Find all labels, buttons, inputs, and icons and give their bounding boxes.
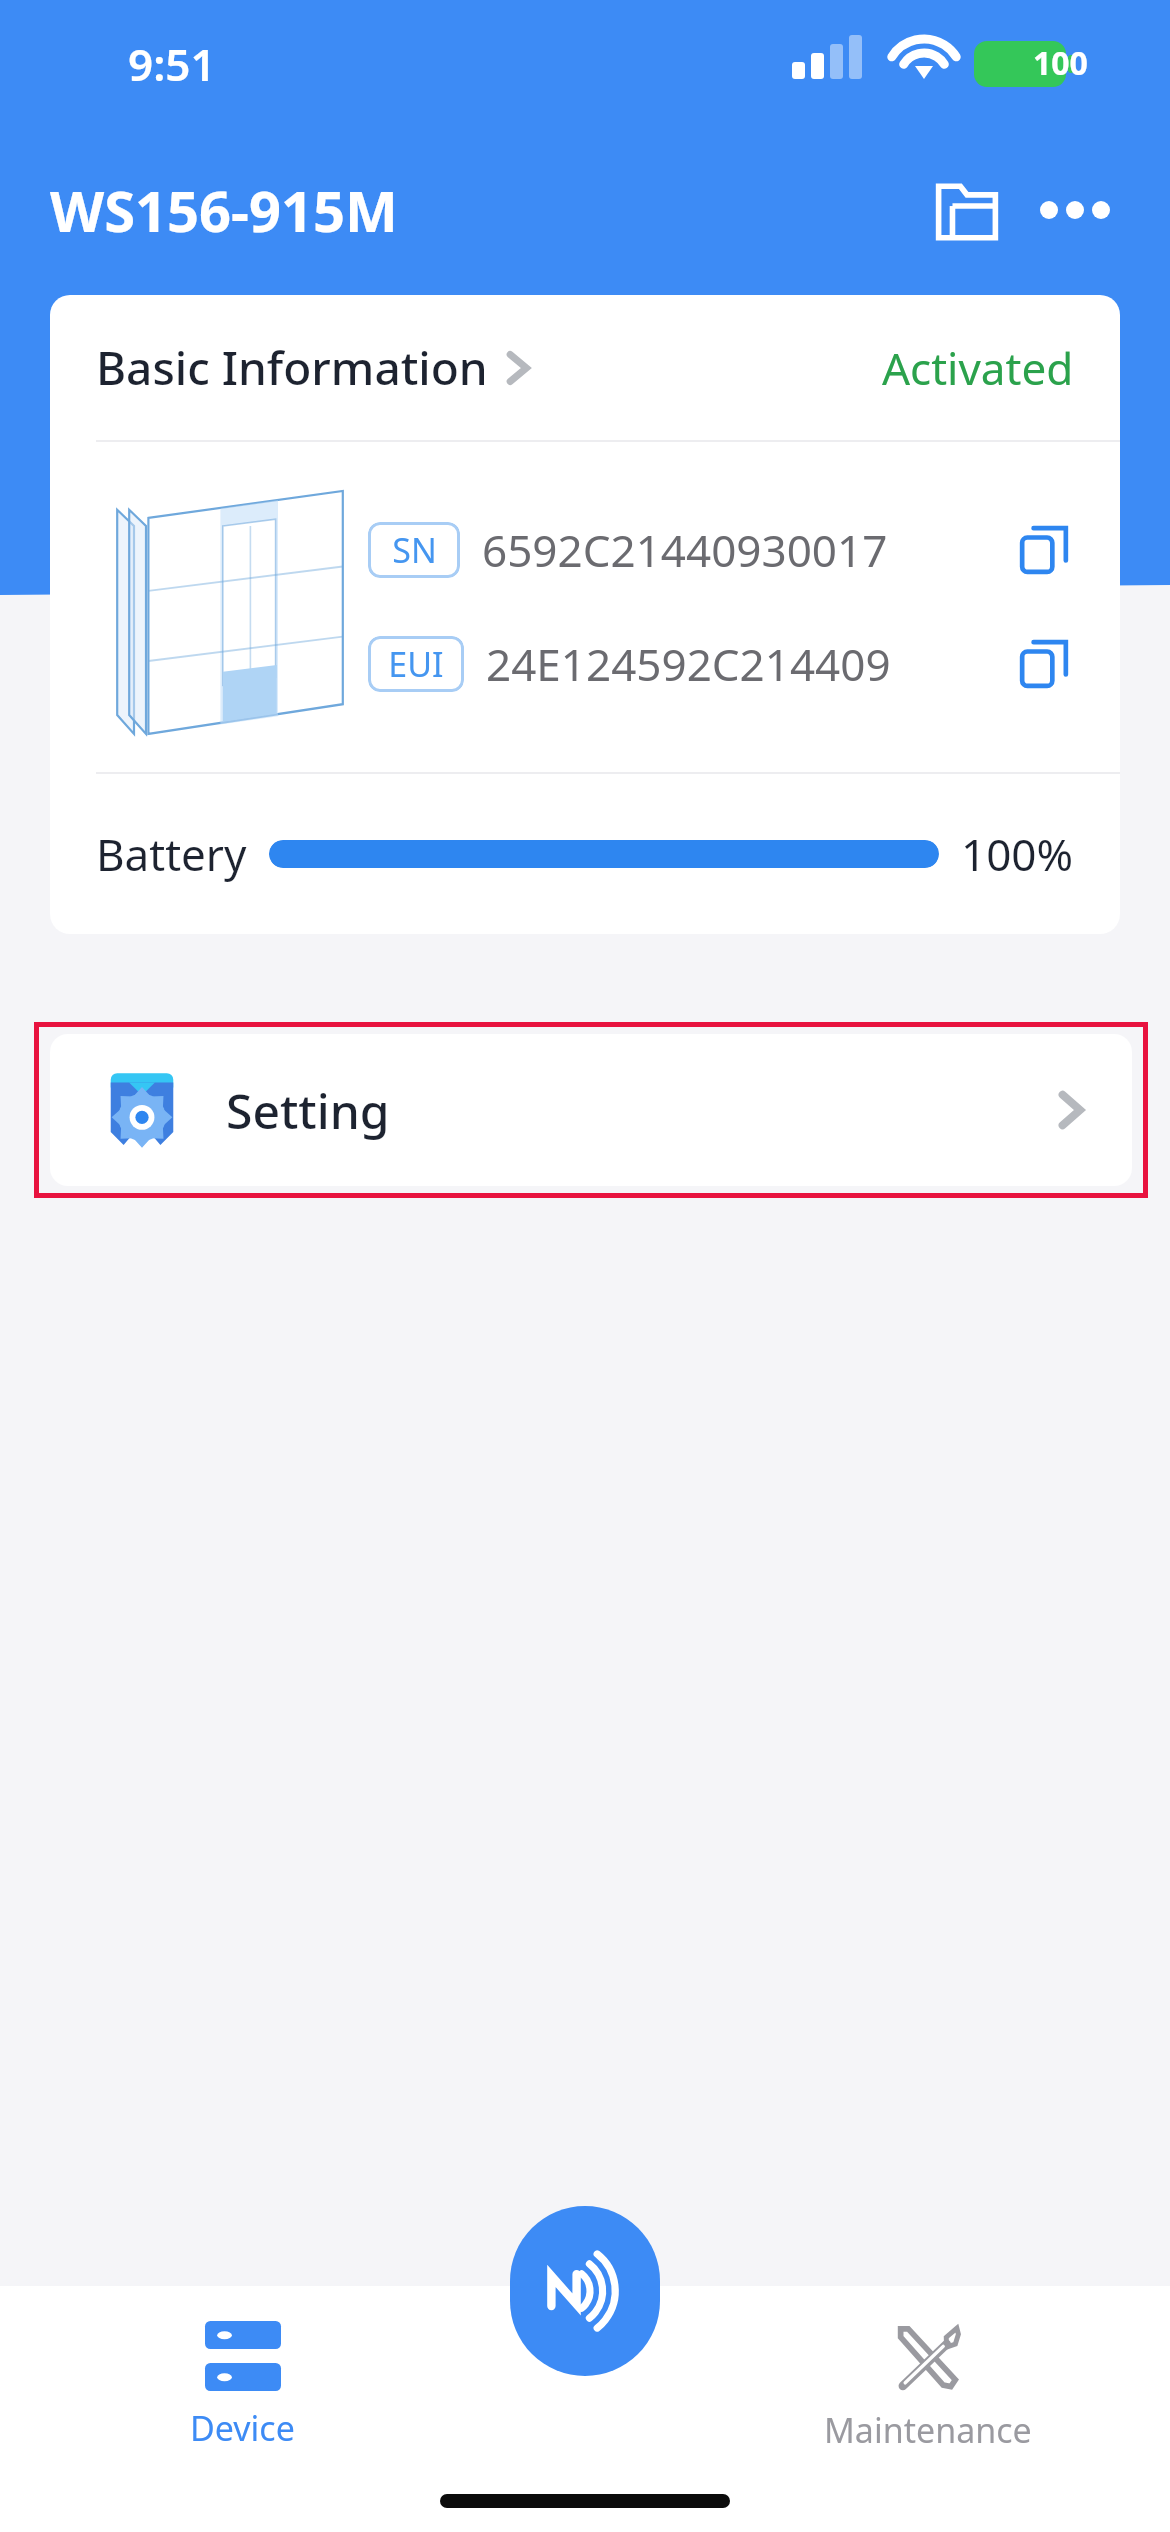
staticText: Setting <box>226 1078 390 1143</box>
staticText: Maintenance <box>824 2407 1032 2453</box>
staticText: 100% <box>961 824 1074 884</box>
button[interactable]: Setting <box>50 1034 1132 1186</box>
button[interactable]: Device <box>0 2286 485 2486</box>
staticText: 9:51 <box>128 34 216 94</box>
button[interactable]: Copy EUI <box>1008 628 1080 700</box>
staticText: Basic Information <box>96 336 488 399</box>
staticText: 100 <box>1033 41 1088 85</box>
staticText: 24E124592C214409 <box>486 634 891 694</box>
staticText: WS156-915M <box>50 172 398 248</box>
staticText: Device <box>190 2405 295 2451</box>
staticText: 6592C21440930017 <box>482 520 888 580</box>
staticText: SN <box>392 527 437 573</box>
button[interactable]: More options <box>1030 165 1120 255</box>
button[interactable]: NFC scan <box>510 2206 660 2376</box>
staticText: EUI <box>388 641 444 687</box>
button[interactable]: Basic Information <box>50 295 1120 440</box>
button[interactable]: Copy SN <box>1008 514 1080 586</box>
button[interactable]: Maintenance <box>685 2286 1170 2486</box>
staticText: Activated <box>882 338 1074 398</box>
button[interactable]: Files <box>922 165 1012 255</box>
staticText: Battery <box>96 824 247 884</box>
